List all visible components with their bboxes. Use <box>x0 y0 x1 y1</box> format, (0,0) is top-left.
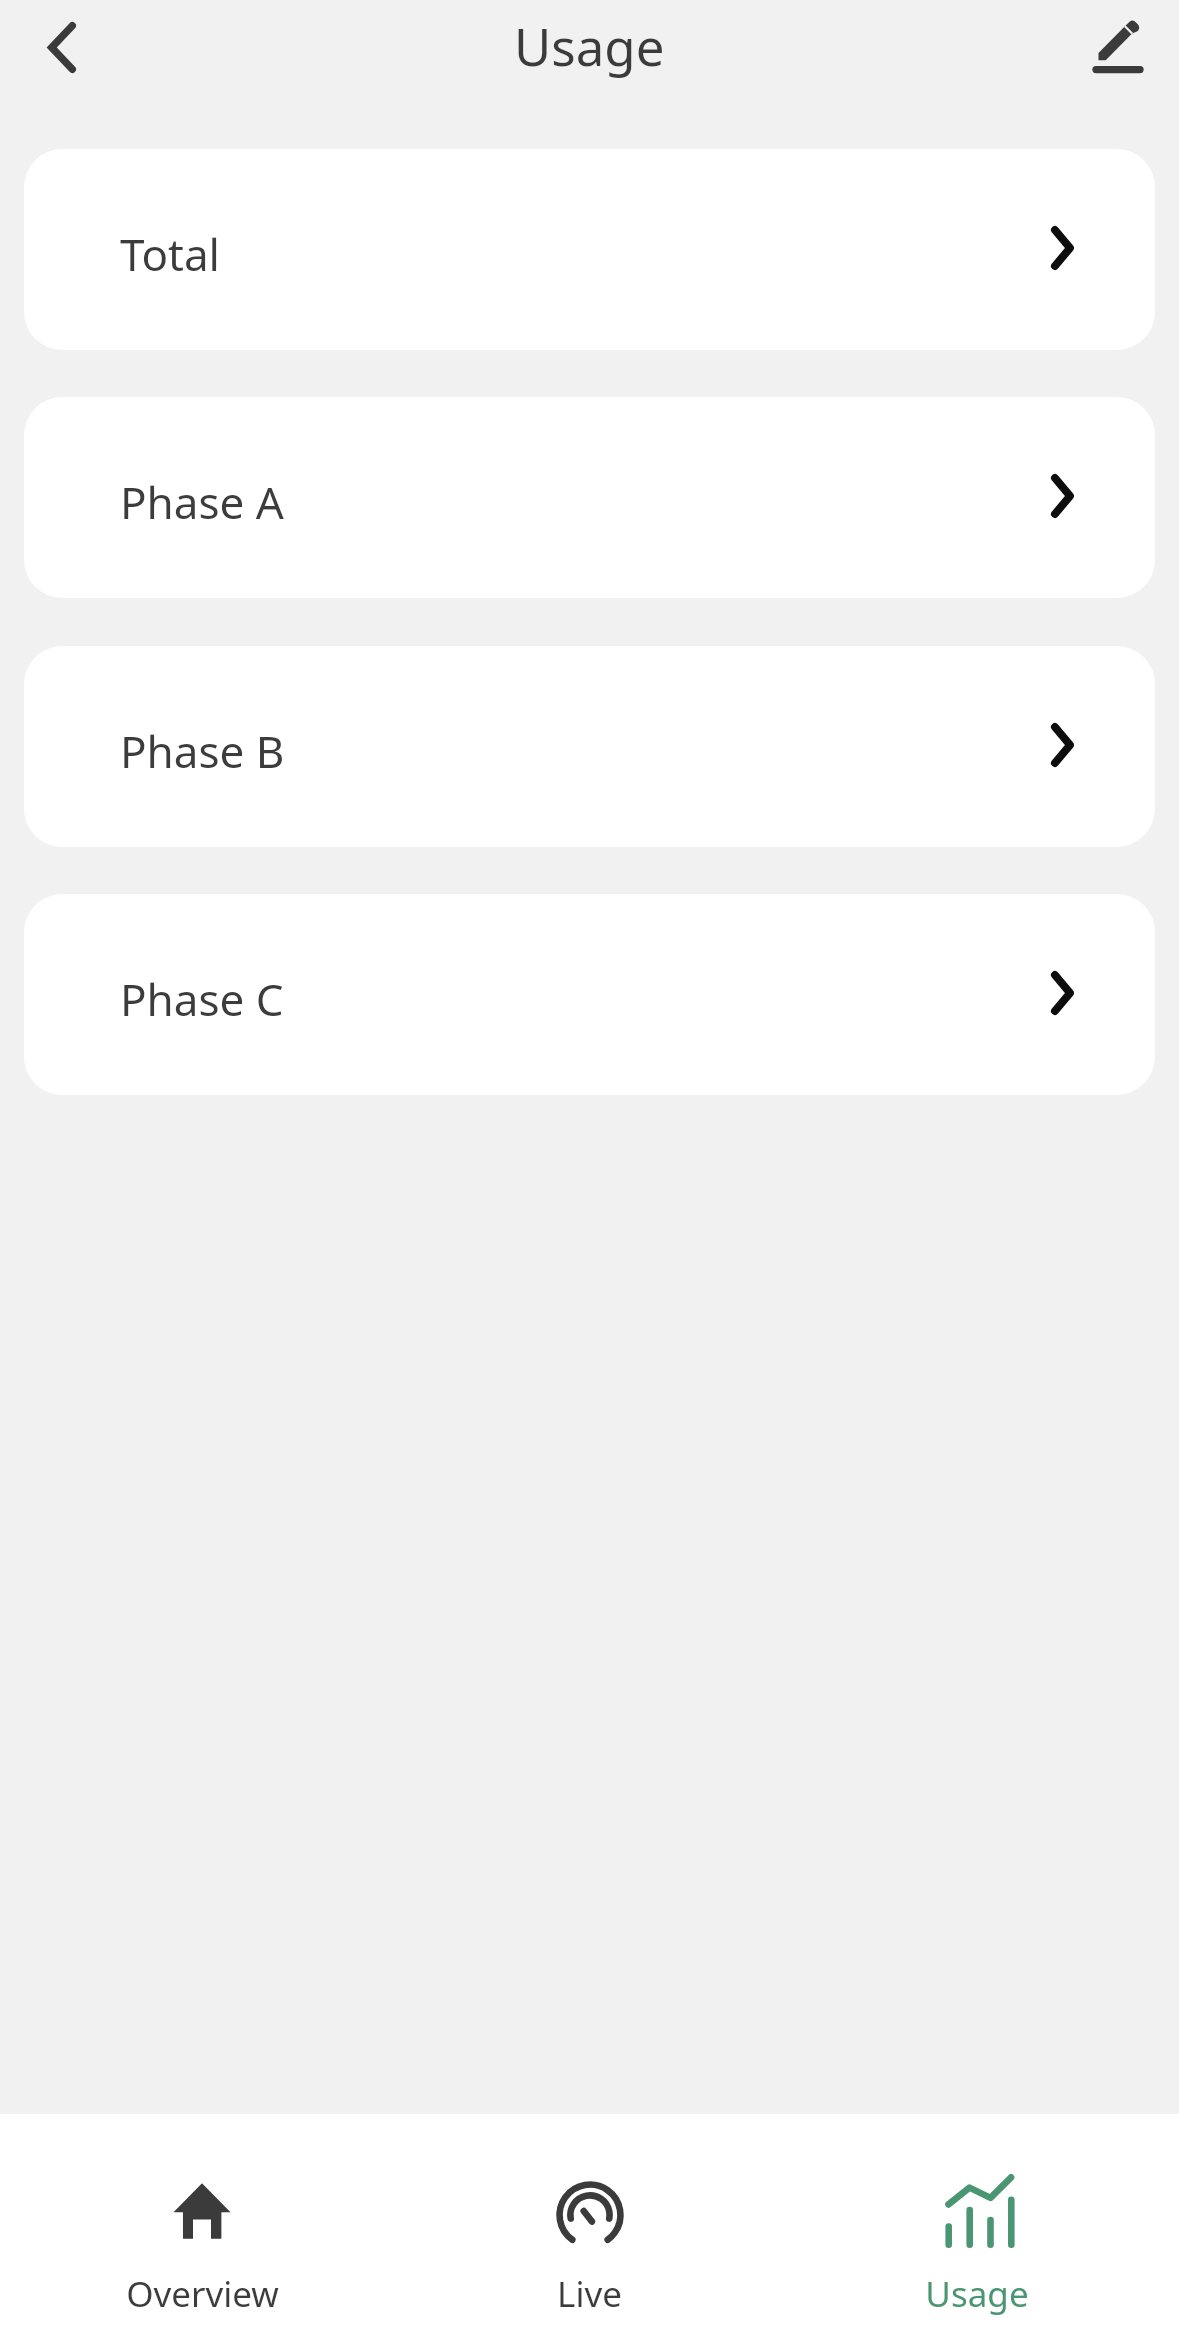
button[interactable]: Back <box>17 2 107 92</box>
button[interactable]: Edit <box>1073 2 1163 92</box>
staticText: Overview <box>126 2270 279 2318</box>
button[interactable]: Phase C <box>24 894 1155 1095</box>
staticText: Phase C <box>120 969 284 1029</box>
staticText: Live <box>557 2270 622 2318</box>
staticText: Phase B <box>120 721 285 781</box>
button[interactable]: Live <box>393 2114 786 2351</box>
button[interactable]: Overview <box>0 2114 393 2351</box>
button[interactable]: Phase B <box>24 646 1155 847</box>
staticText: Usage <box>925 2270 1029 2318</box>
button[interactable]: Total <box>24 149 1155 350</box>
staticText: Total <box>120 224 220 284</box>
button[interactable]: Phase A <box>24 397 1155 598</box>
button[interactable]: Usage <box>786 2114 1179 2351</box>
staticText: Usage <box>514 11 665 80</box>
staticText: Phase A <box>120 472 284 532</box>
